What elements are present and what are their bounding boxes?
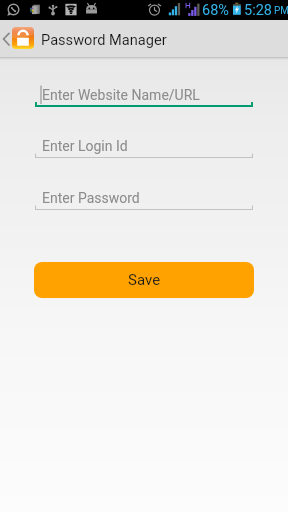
staticText: Save (128, 271, 161, 289)
staticText: Enter Website Name/URL (42, 87, 200, 103)
staticText: 5:28 (244, 2, 272, 19)
button[interactable]: Enter Login Id (35, 136, 253, 158)
button[interactable]: Enter Website Name/URL (35, 85, 253, 107)
staticText: Enter Password (42, 190, 140, 206)
staticText: 68% (202, 2, 229, 19)
button[interactable]: Enter Password (35, 188, 253, 210)
staticText: Enter Login Id (42, 138, 128, 154)
button[interactable]: Back (0, 20, 12, 57)
staticText: H (185, 1, 191, 10)
staticText: PM (274, 5, 288, 17)
staticText: Password Manager (41, 31, 167, 48)
button[interactable]: Save (34, 262, 254, 298)
